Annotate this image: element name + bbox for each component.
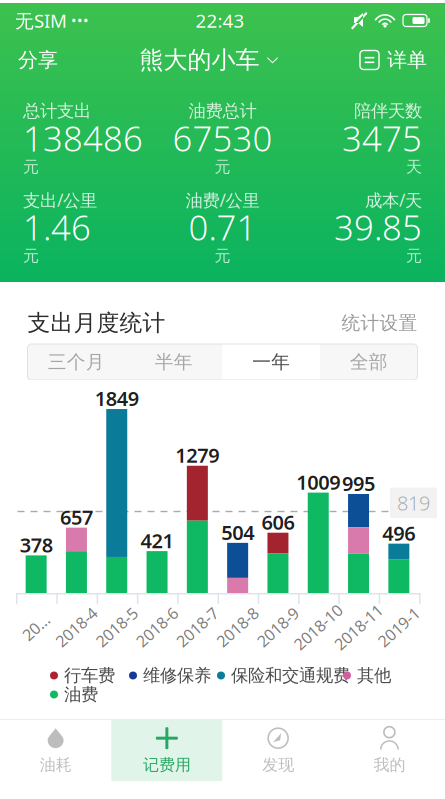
button[interactable]: 详单 [342,38,445,82]
staticText: 504 [221,519,254,545]
staticText: 油耗 [40,755,72,775]
staticText: 无SIM [15,8,67,33]
staticText: 支出/公里 [23,188,97,211]
button[interactable]: 油耗 [0,720,111,781]
staticText: 详单 [387,48,427,72]
button[interactable]: 统计设置 [341,312,417,334]
staticText: 支出月度统计 [27,309,165,337]
staticText: 记费用 [143,755,191,775]
staticText: 995 [342,470,375,497]
button[interactable]: 我的 [334,720,445,781]
button[interactable]: 发现 [222,720,334,781]
staticText: 油费/公里 [185,188,259,211]
button[interactable]: 三个月 [27,344,125,380]
staticText: 天 [406,157,422,177]
staticText: 保险和交通规费 [231,665,350,686]
staticText: 1009 [296,469,340,495]
staticText: 分享 [18,48,58,72]
staticText: 3475 [342,115,422,161]
staticText: 元 [23,246,39,266]
staticText: 2018-11 [329,616,388,638]
staticText: 138486 [23,115,143,161]
staticText: 421 [140,527,173,554]
staticText: 2018-9 [253,616,303,638]
staticText: 496 [382,520,415,546]
staticText: 0.71 [188,204,256,250]
staticText: 378 [20,531,53,558]
staticText: 1.46 [23,204,91,250]
button[interactable]: 半年 [125,344,222,380]
button[interactable]: 熊大的小车 [139,38,278,82]
staticText: 2018-10 [289,616,348,638]
staticText: 20… [20,616,51,638]
staticText: 67530 [172,115,272,161]
staticText: 606 [261,509,294,535]
button[interactable]: 一年 [222,344,320,380]
staticText: 熊大的小车 [139,45,259,75]
staticText: 2019-1 [374,616,424,638]
staticText: 维修保养 [143,665,211,686]
staticText: 元 [214,157,230,177]
staticText: 发现 [262,755,294,775]
staticText: 其他 [357,665,391,686]
staticText: 统计设置 [341,311,417,334]
staticText: 元 [23,157,39,177]
staticText: 22:43 [195,8,244,33]
staticText: 39.85 [334,204,422,250]
staticText: 一年 [252,350,290,373]
staticText: 2018-7 [172,616,222,638]
staticText: 657 [60,504,93,530]
button[interactable]: 全部 [320,344,417,380]
staticText: 2018-5 [92,616,142,638]
staticText: 总计支出 [23,100,91,122]
staticText: 2018-4 [51,616,101,638]
staticText: 1279 [175,442,219,468]
button[interactable]: 记费用 [111,720,222,781]
staticText: 2018-8 [212,616,262,638]
staticText: 陪伴天数 [354,100,422,122]
staticText: 成本/天 [365,188,422,211]
staticText: 三个月 [48,350,105,373]
staticText: ••• [67,11,89,30]
staticText: 1849 [95,385,139,412]
staticText: 油费总计 [188,100,256,122]
staticText: 元 [406,246,422,266]
staticText: 油费 [64,684,98,705]
staticText: 全部 [350,350,388,373]
button[interactable]: 分享 [0,38,76,82]
staticText: 行车费 [64,665,115,686]
staticText: 2018-6 [132,616,182,638]
staticText: 元 [214,246,230,266]
staticText: 半年 [155,350,193,373]
staticText: 我的 [373,755,405,775]
staticText: 819 [397,489,430,516]
